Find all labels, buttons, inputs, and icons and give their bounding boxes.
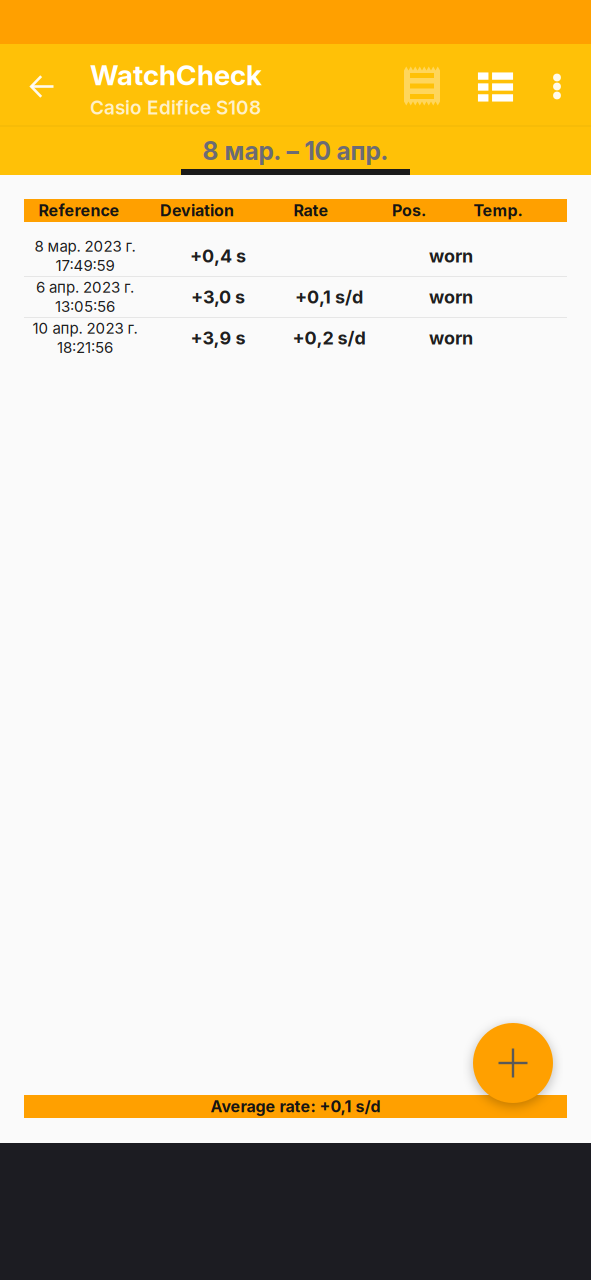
button[interactable]: Report (376, 44, 468, 125)
staticText: 18:21:56 (57, 338, 113, 357)
staticText: 8 мар. – 10 апр. (202, 136, 388, 166)
staticText: +3,0 s (191, 286, 245, 308)
staticText: +3,9 s (190, 327, 245, 349)
staticText: Pos. (392, 201, 426, 220)
button[interactable]: 6 апр. 2023 г. (24, 277, 567, 317)
staticText: worn (429, 286, 473, 308)
staticText: +0,1 s/d (295, 286, 363, 308)
staticText: worn (429, 327, 473, 349)
button[interactable]: More options (523, 44, 591, 125)
staticText: +0,2 s/d (292, 327, 365, 349)
button[interactable]: List view (468, 44, 523, 125)
staticText: 6 апр. 2023 г. (36, 278, 134, 296)
staticText: Reference (38, 201, 119, 220)
staticText: Deviation (160, 201, 234, 220)
button[interactable]: Back (0, 44, 90, 125)
staticText: Casio Edifice S108 (90, 96, 261, 119)
staticText: 10 апр. 2023 г. (32, 319, 137, 337)
staticText: +0,4 s (190, 245, 246, 267)
button[interactable]: 8 мар. – 10 апр. (0, 127, 591, 175)
staticText: worn (429, 245, 473, 267)
button[interactable]: 10 апр. 2023 г. (24, 318, 567, 358)
button[interactable]: Add measurement (473, 1023, 553, 1103)
staticText: Rate (293, 201, 328, 220)
staticText: 13:05:56 (55, 297, 115, 316)
staticText: 17:49:59 (55, 256, 114, 275)
staticText: WatchCheck (90, 58, 262, 92)
staticText: Average rate: +0,1 s/d (210, 1097, 380, 1116)
staticText: Temp. (473, 201, 522, 220)
button[interactable]: 8 мар. 2023 г. (24, 236, 567, 276)
staticText: 8 мар. 2023 г. (34, 237, 135, 255)
